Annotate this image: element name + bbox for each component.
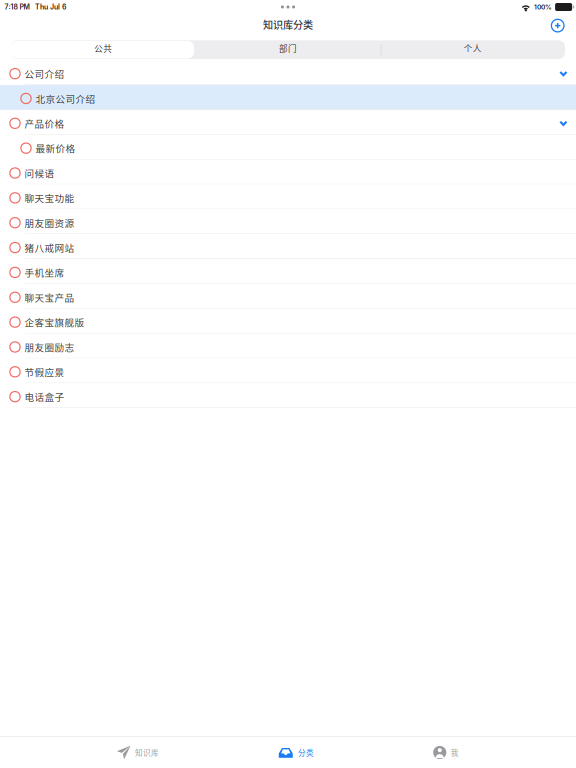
staticText: 公共 <box>94 42 112 54</box>
button[interactable]: 朋友圈资源 <box>0 209 576 234</box>
button[interactable]: 聊天宝产品 <box>0 284 576 309</box>
button[interactable]: 个人 <box>380 40 565 59</box>
staticText: 个人 <box>464 42 482 54</box>
staticText: 朋友圈励志 <box>25 340 75 354</box>
staticText: 聊天宝产品 <box>25 290 75 304</box>
staticText: 猪八戒网站 <box>25 241 75 254</box>
button[interactable]: Add category <box>545 14 570 39</box>
button[interactable]: 手机坐席 <box>0 259 576 284</box>
button[interactable]: 聊天宝功能 <box>0 184 576 209</box>
staticText: 聊天宝功能 <box>25 191 75 205</box>
button[interactable]: 企客宝旗舰版 <box>0 309 576 334</box>
button[interactable]: 我 <box>420 737 472 767</box>
staticText: 100% <box>534 3 552 11</box>
button[interactable]: 知识库 <box>98 737 178 767</box>
button[interactable]: 部门 <box>196 40 380 59</box>
button[interactable]: 电话盒子 <box>0 383 576 408</box>
button[interactable]: 猪八戒网站 <box>0 234 576 259</box>
staticText: 问候语 <box>25 166 55 180</box>
button[interactable]: 公共 <box>11 40 196 59</box>
button[interactable]: 问候语 <box>0 160 576 184</box>
button[interactable]: 北京公司介绍 <box>0 85 576 110</box>
staticText: 最新价格 <box>36 141 76 155</box>
staticText: 产品价格 <box>25 116 65 130</box>
staticText: 节假应景 <box>25 365 65 379</box>
staticText: 北京公司介绍 <box>36 91 96 105</box>
button[interactable]: 最新价格 <box>0 135 576 160</box>
staticText: 知识库分类 <box>263 17 313 32</box>
button[interactable]: 产品价格 <box>0 110 576 135</box>
staticText: 手机坐席 <box>25 265 65 279</box>
staticText: 我 <box>451 747 459 758</box>
staticText: 公司介绍 <box>25 67 65 81</box>
staticText: Thu Jul 6 <box>35 3 66 11</box>
button[interactable]: 节假应景 <box>0 358 576 383</box>
staticText: 朋友圈资源 <box>25 216 75 230</box>
button[interactable]: 朋友圈励志 <box>0 334 576 358</box>
staticText: 知识库 <box>135 747 159 758</box>
staticText: 电话盒子 <box>25 390 65 404</box>
button[interactable]: 分类 <box>256 737 336 767</box>
staticText: 企客宝旗舰版 <box>25 315 85 329</box>
button[interactable]: 公司介绍 <box>0 60 576 85</box>
staticText: 分类 <box>298 747 314 758</box>
staticText: 7:18 PM <box>4 3 29 11</box>
staticText: 部门 <box>279 42 297 54</box>
